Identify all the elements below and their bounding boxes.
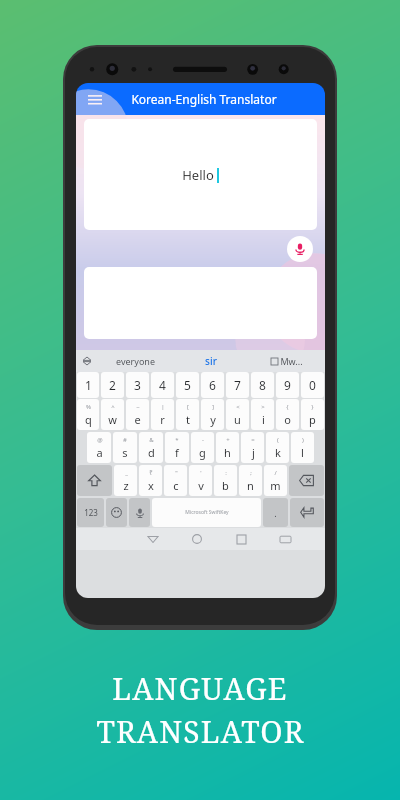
button[interactable]: " (164, 465, 187, 496)
button[interactable]: Emoji (106, 498, 127, 527)
button[interactable]: 3 (126, 372, 149, 398)
staticText: @ (97, 436, 103, 444)
button[interactable]: ' (189, 465, 212, 496)
staticText: > (261, 403, 265, 411)
staticText: 4 (159, 377, 166, 393)
button[interactable]: + (216, 432, 239, 463)
button[interactable]: - (191, 432, 214, 463)
button[interactable]: ~ (126, 399, 149, 430)
staticText: l (301, 445, 304, 460)
button[interactable]: Recents (219, 528, 263, 550)
staticText: z (123, 478, 129, 493)
button[interactable]: 4 (151, 372, 174, 398)
button[interactable]: ] (201, 399, 224, 430)
button[interactable]: Voice typing (129, 498, 150, 527)
staticText: 7 (234, 377, 241, 393)
button[interactable]: # (113, 432, 137, 463)
staticText: f (175, 445, 179, 460)
staticText: 8 (259, 377, 266, 393)
button[interactable]: & (139, 432, 163, 463)
button[interactable]: Hello (84, 119, 317, 230)
staticText: sir (205, 354, 217, 368)
button[interactable]: 123 (77, 498, 104, 527)
button[interactable]: Microsoft SwiftKey (152, 498, 261, 527)
staticText: 1 (85, 377, 92, 393)
staticText: " (175, 469, 178, 477)
staticText: ; (250, 469, 252, 477)
staticText: Hello (182, 166, 214, 184)
staticText: 3 (134, 377, 141, 393)
button[interactable]: 0 (301, 372, 324, 398)
staticText: t (186, 412, 190, 427)
staticText: 9 (284, 377, 291, 393)
staticText: 123 (84, 507, 98, 518)
staticText: } (311, 403, 314, 411)
staticText: LANGUAGE (112, 668, 288, 709)
staticText: + (226, 436, 230, 444)
button[interactable]: ; (239, 465, 262, 496)
button[interactable]: . (263, 498, 288, 527)
button[interactable]: * (165, 432, 189, 463)
staticText: * (175, 436, 179, 444)
button[interactable]: > (251, 399, 274, 430)
button[interactable]: 6 (201, 372, 224, 398)
staticText: c (173, 478, 179, 493)
button[interactable]: sir (173, 350, 249, 372)
button[interactable]: _ (114, 465, 137, 496)
button[interactable]: Enter (290, 498, 324, 527)
button[interactable]: < (226, 399, 249, 430)
staticText: p (309, 412, 316, 427)
staticText: 6 (209, 377, 216, 393)
button[interactable]: Backspace (289, 465, 324, 496)
button[interactable]: } (301, 399, 324, 430)
button[interactable]: 9 (276, 372, 299, 398)
button[interactable]: Shift (77, 465, 112, 496)
staticText: everyone (116, 355, 155, 367)
staticText: ₹ (149, 469, 153, 477)
button[interactable]: | (151, 399, 174, 430)
staticText: . (274, 507, 277, 519)
button[interactable]: Home (175, 528, 219, 550)
staticText: x (148, 478, 154, 493)
button[interactable]: ₹ (139, 465, 162, 496)
button[interactable]: 8 (251, 372, 274, 398)
button[interactable]: { (276, 399, 299, 430)
staticText: 5 (184, 377, 191, 393)
button[interactable]: ) (291, 432, 314, 463)
staticText: & (149, 436, 154, 444)
button[interactable]: : (214, 465, 237, 496)
button[interactable]: 1 (77, 372, 99, 398)
button[interactable]: / (264, 465, 287, 496)
staticText: < (236, 403, 240, 411)
button[interactable]: ( (266, 432, 289, 463)
staticText: ' (200, 469, 202, 477)
button[interactable]: ^ (101, 399, 124, 430)
button[interactable]: Mw... (249, 350, 325, 372)
button[interactable]: everyone (98, 350, 173, 372)
button[interactable]: @ (87, 432, 111, 463)
staticText: # (123, 436, 127, 444)
staticText: ~ (136, 403, 140, 411)
button[interactable]: Voice input (287, 236, 313, 262)
button[interactable]: [ (176, 399, 199, 430)
button[interactable]: Expand suggestions (76, 350, 98, 372)
button[interactable]: % (77, 399, 99, 430)
button[interactable]: Menu (82, 86, 108, 112)
staticText: e (134, 412, 141, 427)
staticText: - (202, 436, 204, 444)
staticText: o (284, 412, 291, 427)
button[interactable]: = (241, 432, 264, 463)
staticText: _ (125, 469, 128, 477)
staticText: n (247, 478, 254, 493)
button[interactable]: Back (130, 528, 175, 550)
staticText: 0 (309, 377, 316, 393)
staticText: ) (302, 436, 304, 444)
staticText: Mw... (280, 355, 303, 367)
button[interactable]: 2 (101, 372, 124, 398)
button[interactable]: 5 (176, 372, 199, 398)
button[interactable]: Switch keyboard (263, 528, 307, 550)
staticText: d (148, 445, 155, 460)
button[interactable]: 7 (226, 372, 249, 398)
staticText: r (160, 412, 165, 427)
